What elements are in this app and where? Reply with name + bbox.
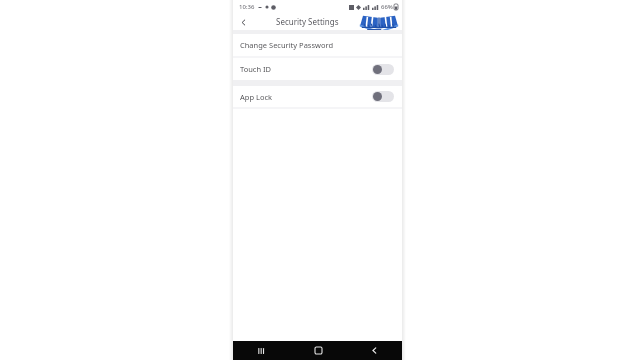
button[interactable]: Touch ID <box>233 58 402 80</box>
button[interactable]: Recent apps <box>233 341 290 360</box>
button[interactable]: Toggle <box>372 64 394 75</box>
staticText: Touch ID <box>240 64 372 74</box>
button[interactable]: Home <box>290 341 346 360</box>
button[interactable]: Change Security Password <box>233 34 402 56</box>
button[interactable]: App Lock <box>233 86 402 107</box>
staticText: Change Security Password <box>240 40 394 50</box>
staticText: 10:36 <box>239 3 255 11</box>
button[interactable]: Toggle <box>372 91 394 102</box>
staticText: App Lock <box>240 92 372 102</box>
staticText: 66% <box>381 3 393 11</box>
button[interactable]: Back <box>236 15 250 29</box>
button[interactable]: Back <box>346 341 402 360</box>
staticText: Security Settings <box>276 16 339 27</box>
